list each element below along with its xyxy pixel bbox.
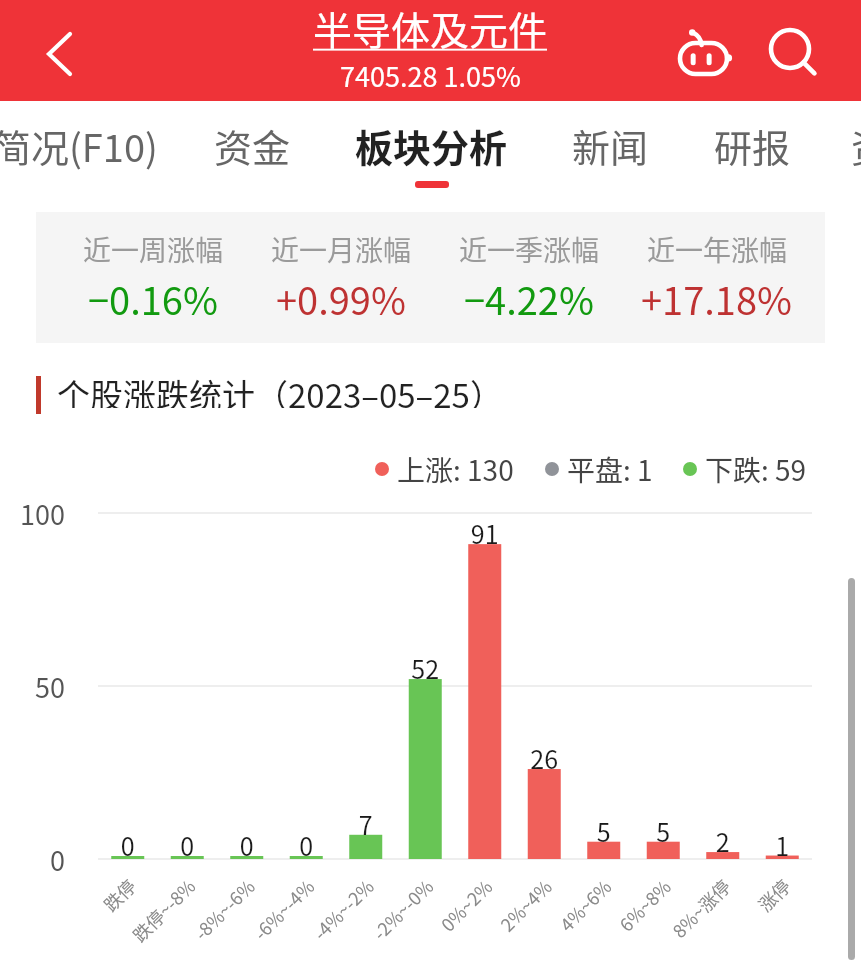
staticText: 新闻 bbox=[572, 118, 649, 173]
staticText: 7405.28 1.05% bbox=[340, 56, 521, 95]
button[interactable]: 板块分析 bbox=[355, 101, 508, 195]
button[interactable]: 资 bbox=[851, 101, 861, 195]
button[interactable]: Search bbox=[759, 0, 829, 101]
staticText: 简况(F10) bbox=[0, 118, 158, 173]
staticText: 资金 bbox=[214, 118, 291, 173]
button[interactable]: 简况(F10) bbox=[0, 101, 158, 195]
staticText: 平盘: 1 bbox=[567, 449, 653, 489]
staticText: 近一周涨幅 bbox=[83, 229, 224, 270]
staticText: 近一季涨幅 bbox=[459, 229, 600, 270]
staticText: −0.16% bbox=[88, 271, 218, 326]
button[interactable]: 近一年涨幅 bbox=[623, 212, 811, 343]
button[interactable]: 近一周涨幅 bbox=[59, 212, 247, 343]
staticText: +0.99% bbox=[276, 271, 406, 326]
button[interactable]: Back bbox=[24, 15, 96, 87]
staticText: 近一月涨幅 bbox=[271, 229, 412, 270]
button[interactable]: 资金 bbox=[214, 101, 291, 195]
staticText: 研报 bbox=[714, 118, 791, 173]
staticText: 上涨: 130 bbox=[397, 449, 514, 489]
staticText: 近一年涨幅 bbox=[647, 229, 788, 270]
button[interactable]: 近一月涨幅 bbox=[247, 212, 435, 343]
staticText: −4.22% bbox=[464, 271, 594, 326]
staticText: 个股涨跌统计（2023–05–25） bbox=[57, 370, 503, 408]
button[interactable]: 近一季涨幅 bbox=[435, 212, 623, 343]
staticText: 板块分析 bbox=[355, 118, 508, 173]
staticText: +17.18% bbox=[641, 271, 793, 326]
staticText: 下跌: 59 bbox=[705, 449, 807, 489]
button[interactable]: AI assistant bbox=[671, 0, 741, 101]
button[interactable]: 研报 bbox=[714, 101, 791, 195]
button[interactable]: 新闻 bbox=[572, 101, 649, 195]
staticText: 资 bbox=[851, 118, 861, 173]
staticText: 半导体及元件 bbox=[313, 0, 548, 56]
